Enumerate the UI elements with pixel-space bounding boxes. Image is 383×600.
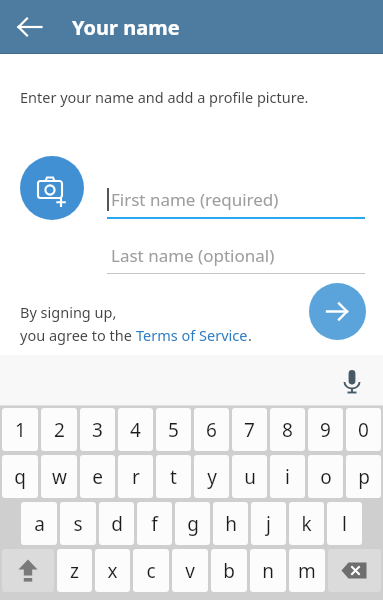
- staticText: Your name: [72, 14, 180, 41]
- staticText: 4: [130, 417, 141, 443]
- button[interactable]: s: [60, 502, 96, 545]
- button[interactable]: 7: [232, 408, 267, 451]
- button[interactable]: t: [156, 455, 191, 498]
- staticText: c: [146, 558, 156, 584]
- staticText: s: [73, 511, 83, 537]
- staticText: x: [107, 558, 118, 584]
- staticText: 7: [244, 417, 255, 443]
- staticText: 0: [358, 417, 369, 443]
- button[interactable]: g: [175, 502, 210, 545]
- staticText: 5: [168, 417, 179, 443]
- button[interactable]: b: [211, 549, 247, 592]
- button[interactable]: p: [346, 455, 381, 498]
- staticText: d: [111, 511, 123, 537]
- staticText: o: [320, 464, 332, 490]
- button[interactable]: h: [213, 502, 248, 545]
- staticText: z: [70, 558, 79, 584]
- button[interactable]: Add profile picture: [20, 156, 84, 220]
- button[interactable]: j: [251, 502, 286, 545]
- button[interactable]: 2: [41, 408, 77, 451]
- button[interactable]: you agree to the: [20, 325, 252, 345]
- staticText: By signing up,: [20, 302, 117, 322]
- button[interactable]: 0: [346, 408, 381, 451]
- button[interactable]: Back: [8, 5, 52, 49]
- staticText: l: [342, 511, 347, 537]
- staticText: k: [301, 511, 312, 537]
- staticText: 2: [54, 417, 65, 443]
- staticText: t: [170, 464, 177, 490]
- staticText: 1: [15, 417, 26, 443]
- button[interactable]: 1: [2, 408, 38, 451]
- staticText: p: [358, 464, 370, 490]
- button[interactable]: 4: [118, 408, 153, 451]
- button[interactable]: m: [289, 549, 325, 592]
- button[interactable]: e: [80, 455, 115, 498]
- staticText: i: [285, 464, 290, 490]
- staticText: u: [244, 464, 256, 490]
- button[interactable]: x: [95, 549, 130, 592]
- button[interactable]: Voice input: [335, 364, 369, 398]
- staticText: q: [14, 464, 26, 490]
- staticText: j: [266, 511, 271, 537]
- button[interactable]: 9: [308, 408, 343, 451]
- button[interactable]: k: [289, 502, 324, 545]
- staticText: b: [223, 558, 235, 584]
- button[interactable]: q: [2, 455, 38, 498]
- staticText: Terms of Service: [136, 325, 248, 345]
- staticText: h: [225, 511, 237, 537]
- staticText: Enter your name and add a profile pictur…: [20, 87, 309, 107]
- button[interactable]: v: [172, 549, 208, 592]
- staticText: .: [248, 325, 252, 345]
- button[interactable]: w: [41, 455, 77, 498]
- button[interactable]: 5: [156, 408, 191, 451]
- button[interactable]: Last name (optional): [107, 242, 365, 275]
- button[interactable]: d: [99, 502, 134, 545]
- button[interactable]: 8: [270, 408, 305, 451]
- staticText: 6: [206, 417, 217, 443]
- button[interactable]: Shift: [2, 549, 54, 592]
- staticText: y: [207, 464, 217, 490]
- staticText: e: [92, 464, 103, 490]
- staticText: w: [52, 464, 67, 490]
- button[interactable]: c: [133, 549, 169, 592]
- button[interactable]: Next: [309, 283, 366, 340]
- staticText: 9: [320, 417, 331, 443]
- button[interactable]: Backspace: [328, 549, 381, 592]
- staticText: g: [187, 511, 199, 537]
- staticText: m: [298, 558, 316, 584]
- button[interactable]: f: [137, 502, 172, 545]
- button[interactable]: i: [270, 455, 305, 498]
- staticText: a: [34, 511, 45, 537]
- button[interactable]: r: [118, 455, 153, 498]
- button[interactable]: z: [57, 549, 92, 592]
- button[interactable]: a: [21, 502, 57, 545]
- staticText: Last name (optional): [111, 244, 275, 267]
- button[interactable]: u: [232, 455, 267, 498]
- staticText: you agree to the: [20, 325, 136, 345]
- button[interactable]: First name (required): [107, 185, 365, 221]
- button[interactable]: 3: [80, 408, 115, 451]
- staticText: v: [185, 558, 195, 584]
- button[interactable]: 6: [194, 408, 229, 451]
- button[interactable]: y: [194, 455, 229, 498]
- button[interactable]: o: [308, 455, 343, 498]
- staticText: 8: [282, 417, 293, 443]
- staticText: 3: [92, 417, 103, 443]
- staticText: f: [151, 511, 158, 537]
- staticText: r: [132, 464, 140, 490]
- button[interactable]: l: [327, 502, 362, 545]
- button[interactable]: n: [250, 549, 286, 592]
- staticText: First name (required): [111, 188, 279, 211]
- staticText: n: [262, 558, 274, 584]
